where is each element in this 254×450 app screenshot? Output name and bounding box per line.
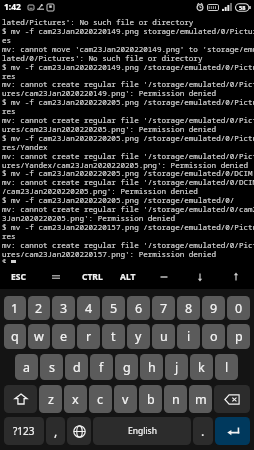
button[interactable]: s	[40, 354, 63, 380]
button[interactable]: Enter	[215, 417, 250, 445]
button[interactable]: b	[139, 385, 162, 413]
staticText: ures/cam23Jan2020220157.png': Permission…	[2, 249, 217, 259]
button[interactable]: Up	[218, 263, 254, 290]
button[interactable]: Tab	[37, 263, 74, 290]
staticText: mv: cannot create regular file '/storage…	[2, 177, 254, 187]
staticText: z	[48, 391, 54, 408]
staticText: 3Jan2020220205.png': Permission denied	[2, 213, 176, 223]
button[interactable]: z	[39, 385, 62, 413]
staticText: d	[73, 359, 81, 376]
button[interactable]: 1	[4, 296, 26, 320]
button[interactable]: m	[189, 385, 212, 413]
button[interactable]: 7	[152, 296, 175, 320]
staticText: mv: cannot create regular file '/storage…	[2, 115, 254, 125]
staticText: ures/Yandex/cam23Jan2020220205.png': Per…	[2, 160, 249, 170]
staticText: 1	[11, 300, 19, 317]
button[interactable]: Down	[182, 263, 218, 290]
button[interactable]: e	[52, 324, 75, 349]
button[interactable]: 0	[227, 296, 250, 320]
button[interactable]: .	[193, 417, 213, 445]
staticText: r	[86, 328, 92, 345]
staticText: p	[235, 328, 243, 345]
staticText: mv: cannot create regular file '/storage…	[2, 151, 254, 161]
button[interactable]: ,	[46, 417, 65, 445]
button[interactable]: Shift	[4, 385, 37, 413]
button[interactable]: Minus	[146, 263, 182, 290]
button[interactable]: t	[102, 324, 125, 349]
staticText: t	[111, 328, 116, 345]
button[interactable]: 9	[202, 296, 225, 320]
button[interactable]: y	[127, 324, 150, 349]
button[interactable]: a	[15, 354, 38, 380]
button[interactable]: Backspace	[214, 385, 250, 413]
button[interactable]: i	[177, 324, 200, 349]
staticText: $ mv -f cam23Jan2020220205.png /storage/…	[2, 195, 235, 205]
staticText: o	[210, 328, 218, 345]
staticText: mv: cannot create regular file '/storage…	[2, 240, 254, 250]
button[interactable]: ESC	[0, 263, 37, 290]
staticText: q	[11, 328, 19, 345]
button[interactable]: Globe	[67, 417, 91, 445]
staticText: l	[225, 359, 229, 376]
button[interactable]: x	[64, 385, 87, 413]
button[interactable]: 2	[28, 296, 50, 320]
staticText: .	[201, 423, 205, 440]
staticText: c	[97, 391, 104, 408]
staticText: lated/Pictures': No such file or directo…	[2, 17, 194, 27]
staticText: j	[175, 359, 179, 376]
staticText: 7	[160, 300, 168, 317]
staticText: ures/cam23Jan2020220205.png': Permission…	[2, 124, 217, 134]
button[interactable]: j	[165, 354, 188, 380]
staticText: g	[123, 359, 131, 376]
button[interactable]: r	[77, 324, 100, 349]
button[interactable]: h	[140, 354, 163, 380]
button[interactable]: 6	[127, 296, 150, 320]
button[interactable]: 5	[102, 296, 125, 320]
button[interactable]: 4	[77, 296, 100, 320]
staticText: es	[2, 35, 12, 45]
button[interactable]: 8	[177, 296, 200, 320]
button[interactable]: English	[93, 417, 191, 445]
button[interactable]: n	[164, 385, 187, 413]
button[interactable]: o	[202, 324, 225, 349]
staticText: b	[147, 391, 155, 408]
staticText: $ mv -f cam23Jan2020220149.png storage/e…	[2, 26, 254, 36]
button[interactable]: ALT	[110, 263, 146, 290]
staticText: 4	[85, 300, 93, 317]
button[interactable]: c	[89, 385, 112, 413]
staticText: res/Yandex	[2, 142, 48, 152]
button[interactable]: v	[114, 385, 137, 413]
button[interactable]: k	[190, 354, 213, 380]
staticText: 58	[239, 4, 246, 12]
staticText: e	[60, 328, 68, 345]
button[interactable]: CTRL	[74, 263, 110, 290]
staticText: n	[172, 391, 180, 408]
staticText: res	[2, 231, 16, 241]
staticText: /cam23Jan2020220205.png': Permission den…	[2, 186, 198, 196]
staticText: v	[122, 391, 129, 408]
staticText: 9	[210, 300, 218, 317]
staticText: ,	[54, 423, 58, 440]
button[interactable]: d	[65, 354, 88, 380]
staticText: f	[99, 359, 104, 376]
staticText: y	[135, 328, 142, 345]
staticText: English	[128, 425, 157, 437]
button[interactable]: 3	[52, 296, 75, 320]
staticText: mv: cannot move 'cam23Jan2020220149.png'…	[2, 44, 254, 54]
button[interactable]: g	[115, 354, 138, 380]
staticText: ESC	[11, 271, 26, 283]
staticText: ?123	[13, 424, 35, 438]
button[interactable]: u	[152, 324, 175, 349]
staticText: res	[2, 106, 16, 116]
button[interactable]: w	[28, 324, 50, 349]
staticText: res	[2, 71, 16, 81]
button[interactable]: f	[90, 354, 113, 380]
button[interactable]: p	[227, 324, 250, 349]
button[interactable]: ?123	[4, 417, 44, 445]
staticText: 6	[135, 300, 143, 317]
staticText: lated/0/Pictures': No such file or direc…	[2, 53, 203, 63]
staticText: a	[23, 359, 31, 376]
button[interactable]: l	[215, 354, 238, 380]
staticText: x	[72, 391, 79, 408]
button[interactable]: q	[4, 324, 26, 349]
